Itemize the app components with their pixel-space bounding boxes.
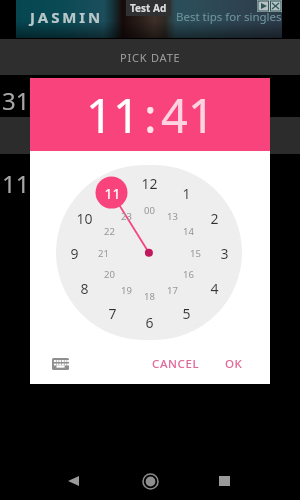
button[interactable]: 23 [112,205,140,227]
staticText: 18 [144,290,155,303]
button[interactable]: 6 [135,311,163,333]
button[interactable]: 10 [70,207,98,229]
staticText: 2 [210,209,219,228]
staticText: CANCEL [152,356,200,372]
staticText: PICK DATE [120,50,181,65]
button[interactable]: 1 [172,182,200,204]
staticText: JASMIN [30,7,104,27]
button[interactable]: 22 [95,220,123,242]
button[interactable]: Recent apps [209,466,239,496]
staticText: 19 [121,284,132,297]
staticText: 11 [2,167,30,200]
staticText: : [144,83,157,147]
button[interactable]: 14 [174,220,202,242]
staticText: 5 [182,304,191,323]
staticText: 1 [182,184,191,203]
button[interactable]: 11 [86,83,140,147]
staticText: 17 [167,284,178,297]
button[interactable]: OK [217,350,251,378]
button[interactable]: 12 [135,172,163,194]
button[interactable]: 11 [98,182,126,204]
button[interactable]: 00 [135,199,163,221]
button[interactable]: CANCEL [144,350,208,378]
button[interactable]: 16 [174,263,202,285]
staticText: 4 [210,279,219,298]
staticText: 3 [220,244,229,263]
staticText: Test Ad [130,1,167,15]
staticText: 31 [2,84,30,117]
button[interactable]: PICK DATE [0,39,300,75]
staticText: 20 [104,268,115,281]
staticText: 9 [70,244,79,263]
button[interactable]: 5 [172,302,200,324]
staticText: 10 [76,209,93,228]
staticText: 13 [167,210,178,223]
staticText: 16 [183,268,194,281]
button[interactable]: Back [58,466,88,496]
button[interactable]: 13 [158,205,186,227]
button[interactable]: 15 [181,242,209,264]
button[interactable]: 21 [89,242,117,264]
staticText: 14 [183,225,194,238]
staticText: 6 [145,313,154,332]
staticText: 11 [104,184,121,203]
button[interactable]: Test Ad [130,1,167,15]
button[interactable]: 2 [200,207,228,229]
staticText: 00 [144,204,155,217]
staticText: 12 [141,174,158,193]
button[interactable]: 41 [161,83,215,147]
staticText: 23 [121,210,132,223]
staticText: 8 [80,279,89,298]
button[interactable]: Switch to text input mode [44,348,76,380]
staticText: OK [225,356,243,372]
button[interactable]: Ad choices [257,0,282,12]
staticText: 22 [104,225,115,238]
button[interactable]: 19 [112,279,140,301]
staticText: 15 [190,247,201,260]
button[interactable]: 18 [135,285,163,307]
button[interactable] [16,0,282,38]
button[interactable]: 8 [70,277,98,299]
button[interactable]: 9 [60,242,88,264]
button[interactable]: 3 [210,242,238,264]
button[interactable]: Home [135,466,165,496]
staticText: 21 [98,247,109,260]
button[interactable]: 7 [98,302,126,324]
staticText: Best tips for singles [176,9,282,25]
button[interactable]: 20 [95,263,123,285]
button[interactable]: 17 [158,279,186,301]
staticText: 7 [108,304,117,323]
button[interactable]: 4 [200,277,228,299]
